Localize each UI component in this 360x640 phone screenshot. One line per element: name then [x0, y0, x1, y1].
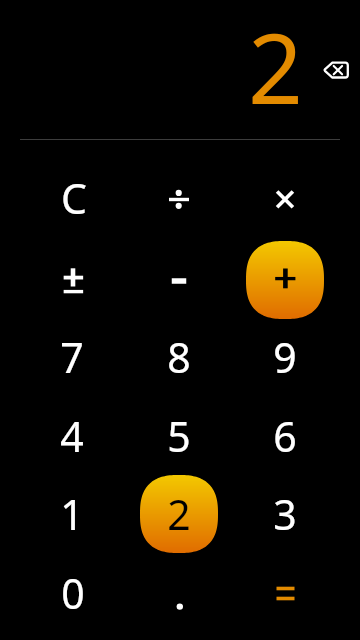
button[interactable]: 7 — [20, 318, 124, 396]
button[interactable]: 3 — [233, 475, 337, 553]
staticText: 3 — [273, 486, 297, 542]
button[interactable]: 4 — [20, 397, 124, 475]
button[interactable]: Equals — [233, 554, 337, 632]
staticText: 0 — [61, 565, 85, 621]
button[interactable]: 2 — [3, 1, 303, 111]
staticText: 9 — [273, 329, 297, 385]
staticText: 6 — [273, 408, 297, 464]
button[interactable]: Backspace — [313, 47, 357, 91]
button[interactable]: 2 — [140, 475, 218, 553]
staticText: 8 — [167, 329, 191, 385]
button[interactable]: C — [22, 159, 126, 237]
button[interactable]: 8 — [127, 318, 231, 396]
button[interactable]: Minus — [127, 241, 231, 319]
staticText: 2 — [167, 486, 191, 542]
staticText: 5 — [167, 408, 191, 464]
staticText: 2 — [248, 1, 303, 111]
button[interactable]: 1 — [20, 475, 124, 553]
button[interactable]: 9 — [233, 318, 337, 396]
staticText: 4 — [60, 408, 84, 464]
staticText: C — [61, 170, 87, 226]
button[interactable]: Decimal point — [127, 554, 231, 632]
staticText: 1 — [60, 486, 84, 542]
button[interactable]: 6 — [233, 397, 337, 475]
button[interactable]: Plus minus — [21, 241, 125, 319]
button[interactable]: Plus — [246, 241, 324, 319]
button[interactable]: Multiply — [233, 160, 337, 238]
button[interactable]: 5 — [127, 397, 231, 475]
button[interactable]: 0 — [21, 554, 125, 632]
button[interactable]: Divide — [127, 160, 231, 238]
staticText: 7 — [60, 329, 84, 385]
